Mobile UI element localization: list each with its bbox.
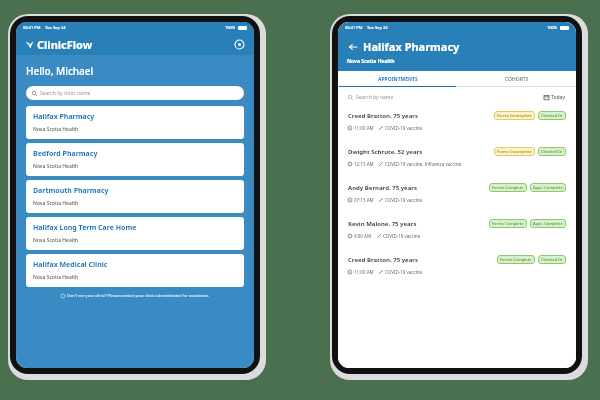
- button[interactable]: Halifax Medical Clinic: [33, 254, 237, 287]
- staticText: 11:00 AM: [354, 269, 374, 275]
- button[interactable]: Forms Incomplete: [497, 149, 532, 154]
- staticText: 03:41 PM: [23, 25, 41, 30]
- button[interactable]: Search by name: [348, 94, 544, 101]
- staticText: Nova Scotia Health: [33, 237, 79, 244]
- staticText: Creed Bratton, 75 years: [348, 256, 418, 264]
- staticText: Today: [551, 94, 566, 101]
- button[interactable]: APPOINTMENTS: [338, 71, 457, 87]
- button[interactable]: Forms Complete: [492, 221, 524, 226]
- button[interactable]: Halifax Long Term Care Home: [33, 217, 237, 250]
- button[interactable]: Checked In: [541, 257, 563, 262]
- button[interactable]: Andy Bernard, 75 years: [348, 183, 566, 203]
- button[interactable]: Today: [544, 94, 566, 101]
- staticText: 12:15 AM: [354, 161, 374, 167]
- staticText: 07:15 AM: [354, 197, 374, 203]
- button[interactable]: COHORTS: [457, 71, 576, 87]
- button[interactable]: Forms Complete: [492, 185, 524, 190]
- staticText: Don't see your clinic? Please contact yo…: [67, 293, 210, 298]
- staticText: Tue Sep 24: [45, 25, 66, 30]
- staticText: Forms Complete: [492, 185, 524, 190]
- staticText: Search by name: [356, 94, 394, 101]
- button[interactable]: Checked In: [541, 149, 563, 154]
- staticText: ClinicFlow: [37, 37, 93, 52]
- staticText: Halifax Long Term Care Home: [33, 223, 137, 233]
- button[interactable]: Search by clinic name: [32, 86, 238, 100]
- staticText: Checked In: [541, 113, 563, 118]
- button[interactable]: Halifax Pharmacy: [33, 106, 237, 139]
- button[interactable]: Bedford Pharmacy: [33, 143, 237, 176]
- staticText: Appt. Complete: [533, 221, 563, 226]
- staticText: APPOINTMENTS: [378, 76, 418, 83]
- staticText: Forms Incomplete: [497, 149, 532, 154]
- button[interactable]: Forms Complete: [500, 257, 532, 262]
- staticText: Nova Scotia Health: [33, 163, 79, 170]
- staticText: 03:41 PM: [345, 25, 363, 30]
- button[interactable]: ClinicFlow: [25, 33, 245, 55]
- staticText: Nova Scotia Health: [33, 274, 79, 281]
- staticText: Nova Scotia Health: [33, 200, 79, 207]
- staticText: Creed Bratton, 75 years: [348, 112, 418, 120]
- staticText: COVID-19 vaccine: [385, 197, 423, 203]
- staticText: COVID-19 vaccine: [385, 125, 423, 131]
- button[interactable]: Settings: [233, 38, 245, 50]
- staticText: Halifax Pharmacy: [363, 39, 460, 54]
- staticText: Tue Sep 24: [367, 25, 388, 30]
- button[interactable]: Kevin Malone, 75 years: [348, 219, 566, 239]
- staticText: Nova Scotia Health: [347, 58, 395, 65]
- staticText: Nova Scotia Health: [33, 126, 79, 133]
- staticText: Andy Bernard, 75 years: [348, 184, 417, 192]
- button[interactable]: Checked In: [541, 113, 563, 118]
- staticText: COVID-19 vaccine: [385, 269, 423, 275]
- staticText: Search by clinic name: [40, 90, 91, 97]
- staticText: Forms Complete: [492, 221, 524, 226]
- staticText: Halifax Pharmacy: [33, 112, 95, 122]
- staticText: 9:00 AM: [354, 233, 372, 239]
- staticText: Halifax Medical Clinic: [33, 260, 108, 270]
- staticText: Dartmouth Pharmacy: [33, 186, 109, 196]
- staticText: Checked In: [541, 257, 563, 262]
- staticText: 100%: [225, 25, 236, 30]
- staticText: Kevin Malone, 75 years: [348, 220, 417, 228]
- staticText: Checked In: [541, 149, 563, 154]
- staticText: Appt. Complete: [533, 185, 563, 190]
- button[interactable]: Dartmouth Pharmacy: [33, 180, 237, 213]
- staticText: COHORTS: [505, 76, 529, 83]
- button[interactable]: Creed Bratton, 75 years: [348, 111, 566, 131]
- staticText: Dwight Schrute, 52 years: [348, 148, 423, 156]
- button[interactable]: Back: [347, 41, 359, 53]
- button[interactable]: Appt. Complete: [533, 221, 563, 226]
- button[interactable]: Dwight Schrute, 52 years: [348, 147, 566, 167]
- staticText: COVID-19 vaccine, Influenza vaccine: [385, 161, 462, 167]
- staticText: Forms Complete: [500, 257, 532, 262]
- staticText: 100%: [547, 25, 558, 30]
- button[interactable]: Forms Incomplete: [497, 113, 532, 118]
- staticText: Bedford Pharmacy: [33, 149, 98, 159]
- button[interactable]: Appt. Complete: [533, 185, 563, 190]
- staticText: 11:00 AM: [354, 125, 374, 131]
- button[interactable]: Creed Bratton, 75 years: [348, 255, 566, 275]
- staticText: Hello, Michael: [26, 64, 94, 78]
- staticText: Forms Incomplete: [497, 113, 532, 118]
- staticText: COVID-19 vaccine: [383, 233, 421, 239]
